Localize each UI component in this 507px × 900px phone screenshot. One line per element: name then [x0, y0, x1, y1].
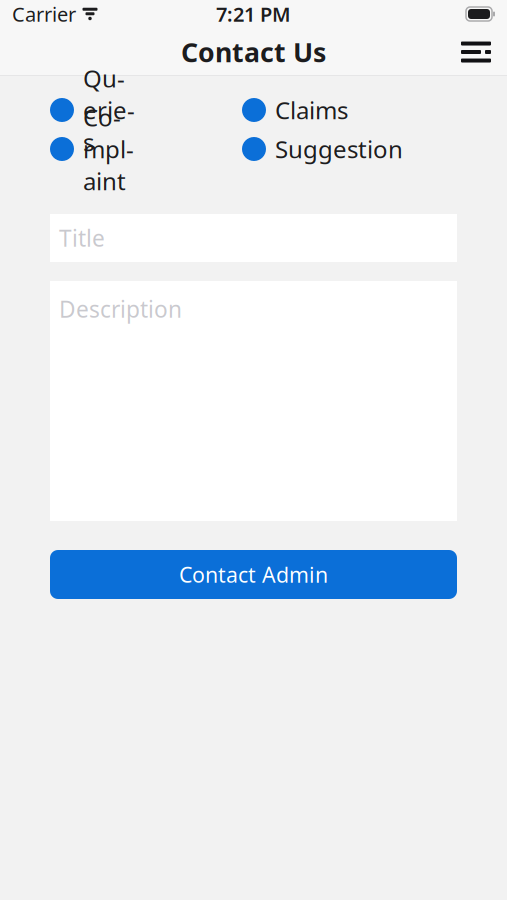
staticText: Complaint [83, 101, 134, 197]
staticText: 7:21 PM [216, 1, 291, 27]
button[interactable]: Title [50, 214, 457, 262]
button[interactable]: Menu [452, 28, 500, 76]
button[interactable]: Suggestion [242, 137, 457, 161]
staticText: Contact Admin [179, 560, 328, 589]
button[interactable]: Claims [242, 98, 457, 122]
staticText: Title [59, 223, 105, 253]
staticText: Suggestion [275, 133, 403, 165]
button[interactable]: Contact Admin [50, 550, 457, 599]
button[interactable]: Queries [50, 98, 146, 122]
staticText: Queries [83, 62, 135, 158]
staticText: Description [59, 294, 182, 324]
staticText: Claims [275, 94, 348, 126]
staticText: Carrier [12, 1, 76, 27]
staticText: Contact Us [181, 34, 326, 70]
button[interactable]: Description [50, 281, 457, 521]
button[interactable]: Complaint [50, 137, 146, 161]
